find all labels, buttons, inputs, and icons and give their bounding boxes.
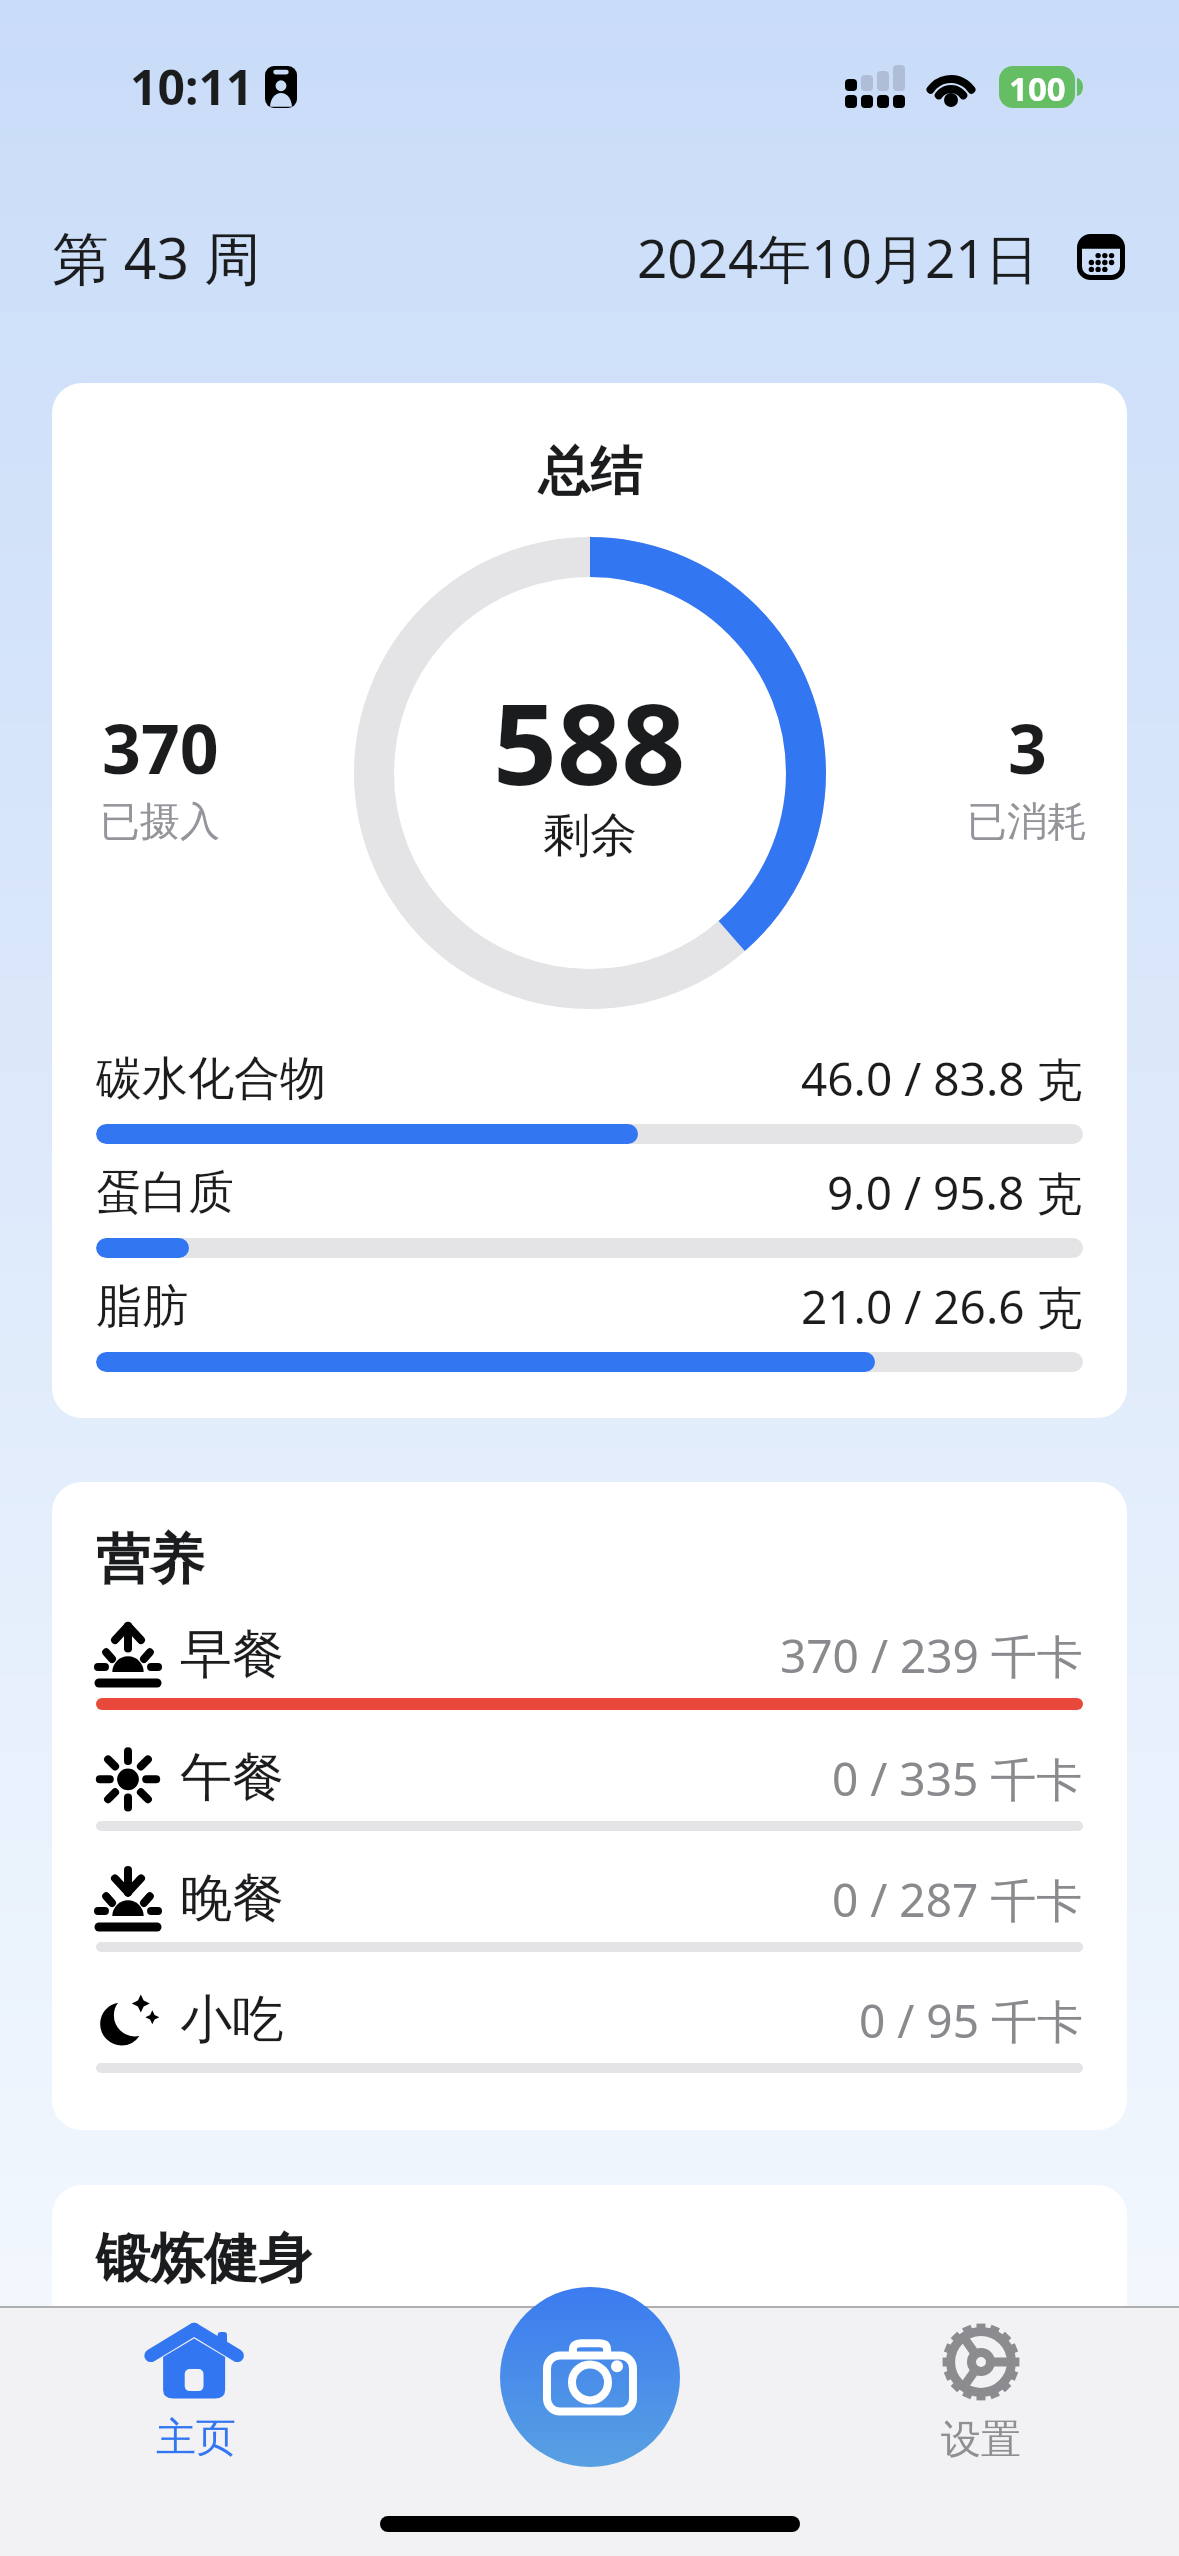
button[interactable]: 晚餐 (96, 1866, 1083, 1952)
staticText: 蛋白质 (96, 1164, 234, 1222)
staticText: 0 / 335 千卡 (832, 1747, 1083, 1810)
staticText: 588 (493, 665, 686, 818)
staticText: 设置 (941, 2414, 1021, 2464)
staticText: 脂肪 (96, 1278, 188, 1336)
button[interactable]: 小吃 (96, 1987, 1083, 2073)
button[interactable]: 2024年10月21日 (637, 221, 1125, 293)
staticText: 46.0 / 83.8 克 (801, 1047, 1083, 1110)
staticText: 21.0 / 26.6 克 (801, 1275, 1083, 1338)
staticText: 370 / 239 千卡 (780, 1624, 1083, 1687)
staticText: 0 / 95 千卡 (859, 1989, 1083, 2052)
staticText: 早餐 (180, 1622, 284, 1688)
button[interactable]: 设置 (915, 2324, 1047, 2464)
staticText: 10:11 (130, 54, 254, 119)
staticText: 锻炼健身 (96, 2225, 312, 2293)
staticText: 已消耗 (967, 796, 1087, 846)
staticText: 午餐 (180, 1745, 284, 1811)
staticText: 营养 (96, 1526, 204, 1594)
button[interactable]: 主页 (130, 2326, 262, 2462)
staticText: 100 (1009, 66, 1066, 106)
staticText: 总结 (538, 439, 642, 505)
button[interactable]: 午餐 (96, 1745, 1083, 1831)
staticText: 碳水化合物 (96, 1050, 326, 1108)
staticText: 小吃 (180, 1987, 284, 2053)
staticText: 370 (102, 701, 219, 794)
staticText: 2024年10月21日 (637, 221, 1039, 293)
staticText: 主页 (156, 2412, 236, 2462)
staticText: 0 / 287 千卡 (832, 1868, 1083, 1931)
staticText: 9.0 / 95.8 克 (827, 1161, 1083, 1224)
staticText: 3 (1008, 701, 1047, 794)
button[interactable] (500, 2287, 680, 2467)
button[interactable]: 第 43 周 (52, 218, 261, 296)
staticText: 剩余 (543, 806, 637, 865)
button[interactable]: 早餐 (96, 1622, 1083, 1710)
staticText: 晚餐 (180, 1866, 284, 1932)
staticText: 已摄入 (100, 796, 220, 846)
